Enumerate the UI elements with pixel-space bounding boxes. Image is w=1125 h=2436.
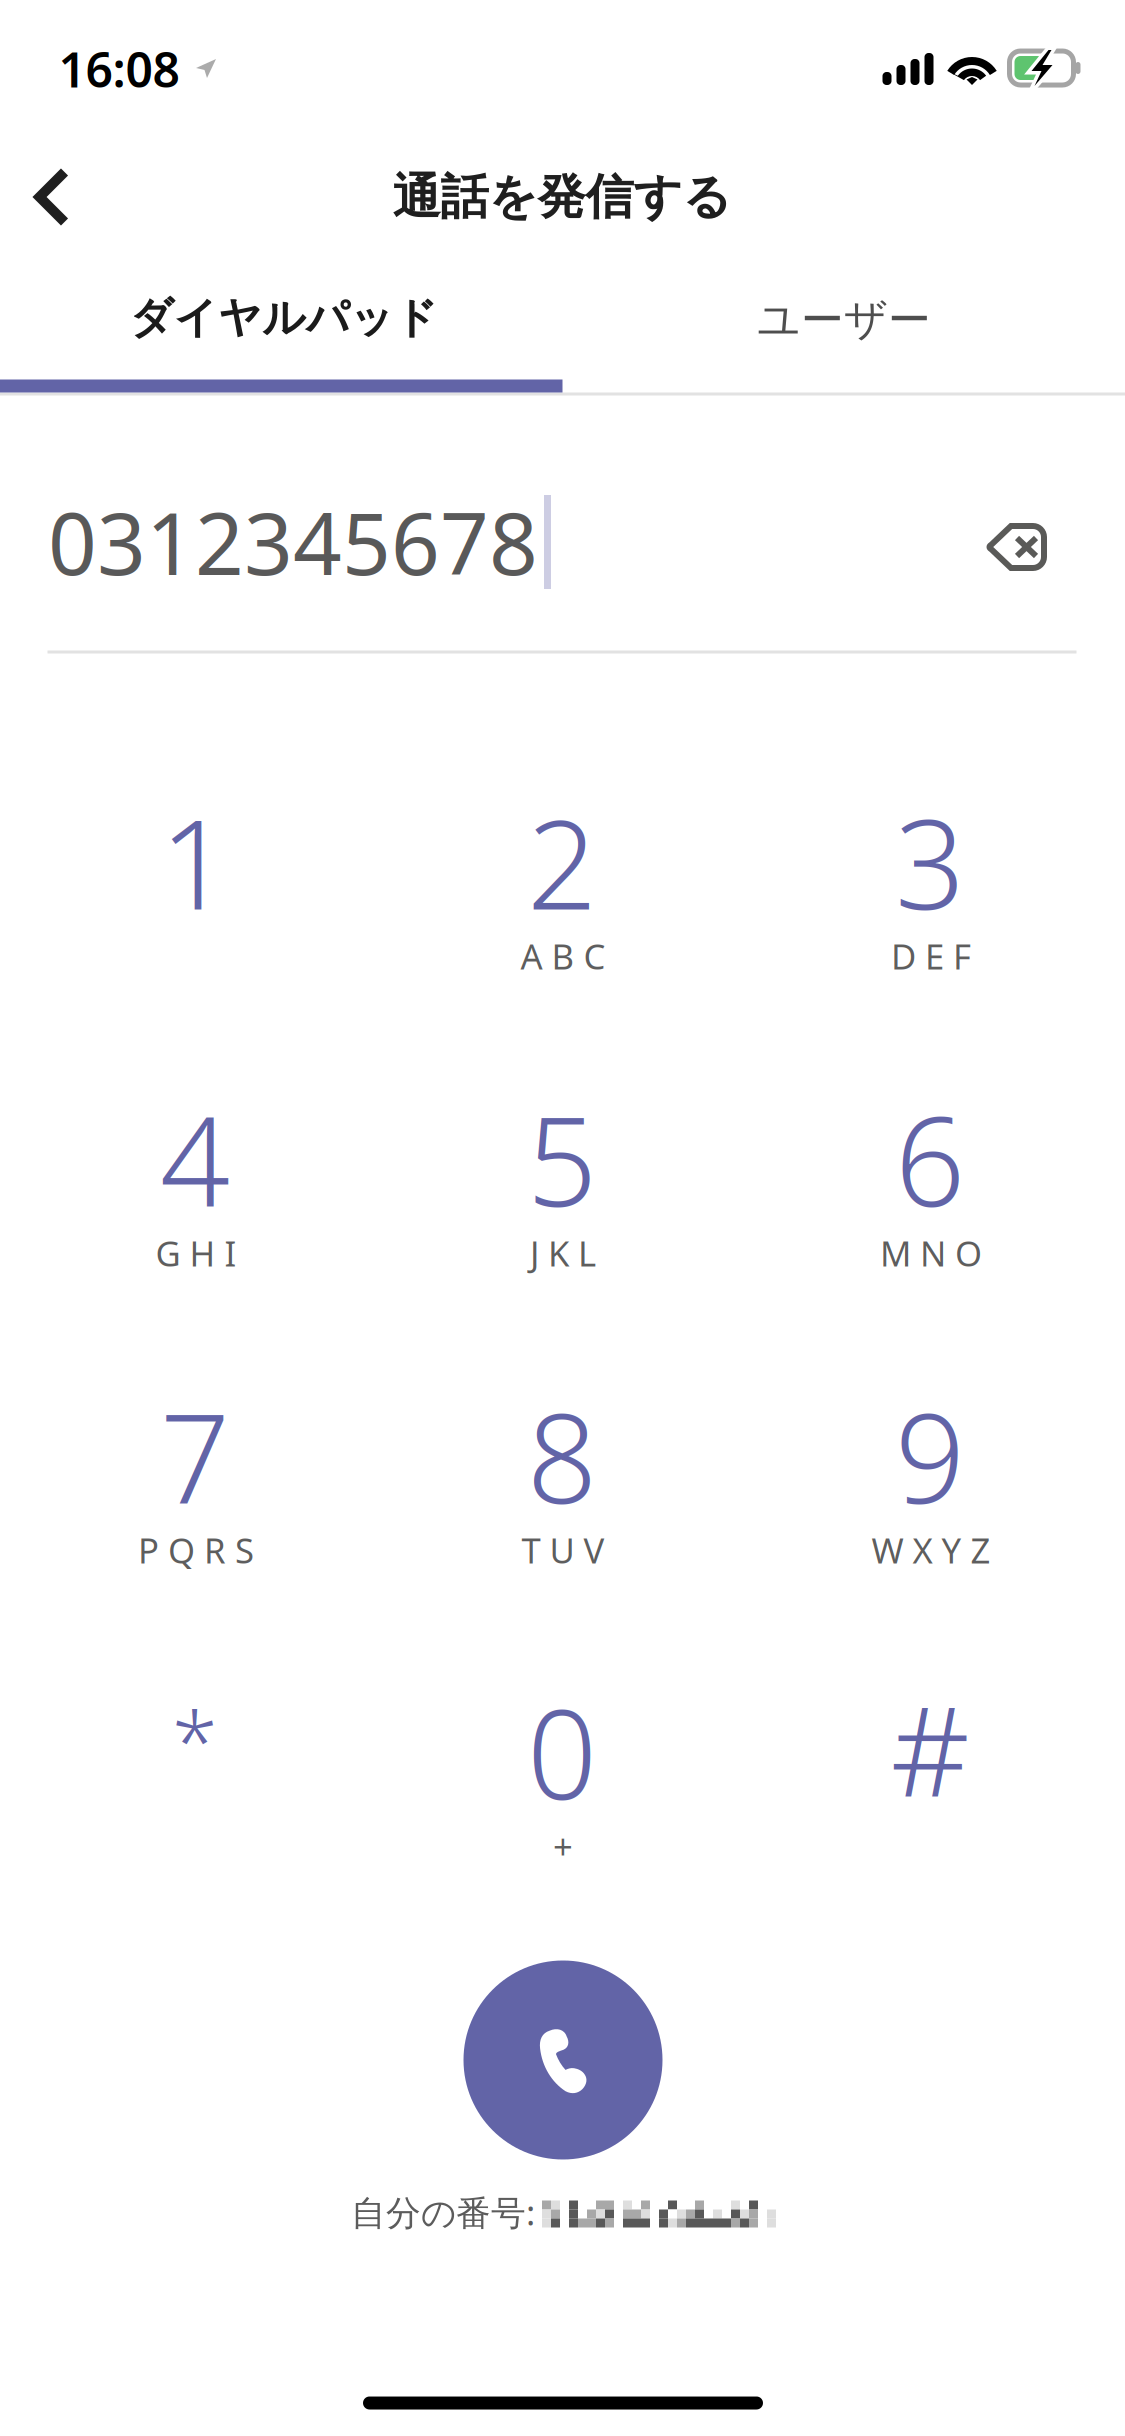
staticText: +	[553, 1823, 573, 1869]
staticText: 16:08	[58, 37, 179, 101]
staticText: PQRS	[138, 1527, 254, 1573]
staticText: 1	[160, 781, 230, 943]
button[interactable]: Back	[0, 132, 117, 262]
staticText: TUV	[521, 1527, 604, 1573]
button[interactable]: 3 DEF	[765, 758, 1095, 1008]
button[interactable]: ダイヤルパッド	[3, 243, 565, 393]
staticText: DEF	[891, 933, 971, 979]
button[interactable]: Delete	[942, 477, 1092, 617]
button[interactable]: Call	[463, 1960, 662, 2159]
staticText: 3	[895, 781, 965, 943]
staticText: 0	[527, 1671, 597, 1833]
staticText: 9	[895, 1375, 965, 1537]
button[interactable]: 7 PQRS	[30, 1352, 360, 1602]
staticText: 5	[527, 1078, 597, 1240]
staticText: ダイヤルパッド	[130, 292, 438, 344]
staticText: WXYZ	[871, 1527, 990, 1573]
staticText: 8	[527, 1375, 597, 1537]
button[interactable]: 0 +	[397, 1648, 727, 1898]
staticText: #	[890, 1668, 969, 1830]
button[interactable]: *	[30, 1648, 360, 1898]
button[interactable]: 9 WXYZ	[765, 1352, 1095, 1602]
staticText: 6	[895, 1078, 965, 1240]
staticText: 0312345678	[48, 485, 538, 599]
button[interactable]: 8 TUV	[397, 1352, 727, 1602]
staticText: ABC	[520, 933, 605, 979]
staticText: 4	[160, 1078, 230, 1240]
staticText: 通話を発信する	[392, 167, 731, 226]
button[interactable]: 5 JKL	[397, 1055, 727, 1305]
staticText: MNO	[880, 1230, 982, 1276]
staticText: 2	[527, 781, 597, 943]
button[interactable]: ユーザー	[562, 245, 1125, 395]
button[interactable]: 2 ABC	[397, 758, 727, 1008]
button[interactable]: 6 MNO	[765, 1055, 1095, 1305]
button[interactable]: 1	[30, 758, 360, 1008]
staticText: *	[172, 1685, 218, 1795]
staticText: ユーザー	[757, 294, 931, 346]
button[interactable]: #	[765, 1648, 1095, 1898]
staticText: GHI	[155, 1230, 236, 1276]
staticText: 自分の番号:	[351, 2189, 535, 2235]
button[interactable]: 4 GHI	[30, 1055, 360, 1305]
staticText: 7	[160, 1375, 230, 1537]
staticText: JKL	[530, 1230, 596, 1276]
